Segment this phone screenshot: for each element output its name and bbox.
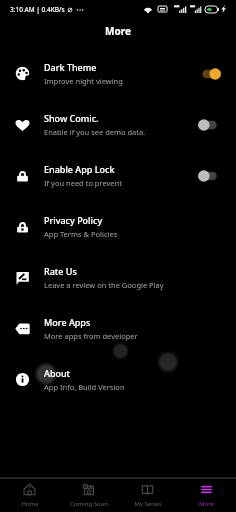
staticText: My Series — [134, 500, 162, 508]
staticText: More — [105, 24, 131, 38]
staticText: Rate Us — [44, 265, 77, 277]
button[interactable]: Privacy Policy — [0, 201, 236, 252]
staticText: App Terms & Policies — [44, 229, 118, 239]
button[interactable]: Rate Us — [0, 252, 236, 303]
staticText: Dark Theme — [44, 61, 97, 73]
staticText: More Apps — [44, 316, 91, 328]
staticText: More — [199, 500, 214, 508]
button[interactable]: Home — [0, 483, 59, 508]
staticText: Privacy Policy — [44, 214, 103, 226]
staticText: Leave a review on the Google Play — [44, 280, 164, 290]
staticText: Improve night viewing — [44, 76, 123, 86]
staticText: About — [44, 367, 71, 379]
button[interactable]: More — [177, 483, 236, 508]
button[interactable]: My Series — [118, 483, 177, 508]
staticText: 3:10 AM | 0.4KB/s — [10, 5, 65, 14]
button[interactable]: More Apps — [0, 303, 236, 354]
button[interactable]: Show Comic. — [0, 99, 236, 150]
button[interactable]: Coming Soon — [59, 483, 118, 508]
staticText: Home — [21, 500, 39, 508]
button[interactable]: Toggle on — [198, 67, 221, 81]
staticText: Enable if you see demo data. — [44, 127, 146, 137]
button[interactable]: About — [0, 354, 236, 405]
button[interactable]: Dark Theme — [0, 48, 236, 99]
staticText: Coming Soon — [70, 500, 108, 508]
staticText: More apps from developer — [44, 331, 138, 341]
staticText: Enable App Lock — [44, 163, 115, 175]
staticText: If you need to prevent — [44, 178, 122, 188]
button[interactable]: Toggle off — [198, 169, 221, 183]
staticText: Show Comic. — [44, 112, 99, 124]
button[interactable]: Enable App Lock — [0, 150, 236, 201]
button[interactable]: Toggle off — [198, 118, 221, 132]
staticText: App Info, Build Version — [44, 382, 125, 392]
